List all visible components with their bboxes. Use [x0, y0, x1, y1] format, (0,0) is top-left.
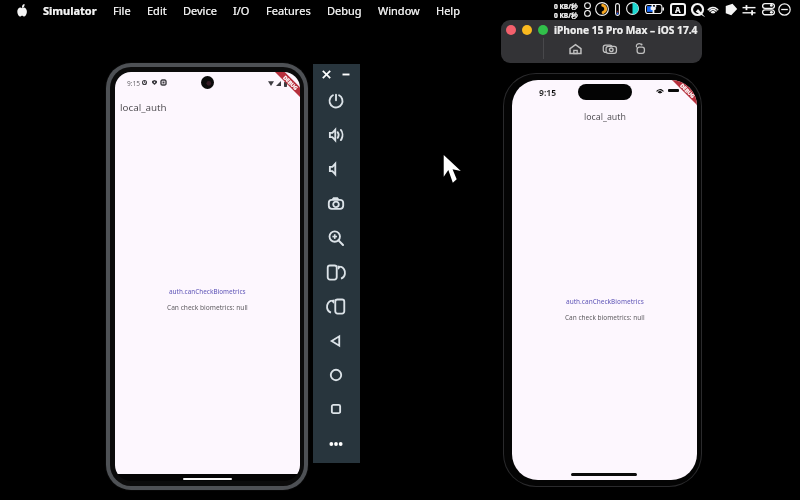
button[interactable]: Rotate right: [327, 263, 345, 281]
staticText: local_auth: [120, 101, 167, 114]
staticText: Window: [378, 3, 420, 18]
button[interactable]: Close window: [506, 25, 516, 35]
button[interactable]: Record screen: [634, 43, 647, 55]
button[interactable]: Edit: [147, 3, 167, 18]
staticText: auth.canCheckBiometrics: [169, 287, 246, 296]
button[interactable]: Rotate left: [327, 297, 345, 315]
button[interactable]: Home: [327, 366, 345, 384]
staticText: iPhone 15 Pro Max – iOS 17.4: [554, 23, 698, 37]
staticText: A: [675, 4, 681, 15]
button[interactable]: Power: [327, 92, 345, 110]
button[interactable]: Minimize window: [522, 25, 532, 35]
button[interactable]: File: [113, 3, 131, 18]
staticText: 9:15: [127, 79, 141, 88]
button[interactable]: Simulator: [43, 3, 97, 18]
staticText: DEBUG: [679, 82, 697, 99]
button[interactable]: Zoom window: [538, 25, 548, 35]
button[interactable]: More: [327, 435, 345, 453]
button[interactable]: I/O: [233, 3, 250, 18]
button[interactable]: Device: [183, 3, 217, 18]
staticText: Edit: [147, 3, 167, 18]
staticText: Can check biometrics: null: [167, 303, 248, 312]
staticText: Simulator: [43, 3, 97, 18]
button[interactable]: Screenshot: [327, 195, 345, 213]
button[interactable]: auth.canCheckBiometrics: [161, 284, 254, 299]
staticText: 0 KB/秒: [554, 2, 578, 11]
button[interactable]: Overview: [327, 400, 345, 418]
staticText: DEBUG: [282, 74, 300, 91]
button[interactable]: Screenshot: [603, 43, 617, 55]
button[interactable]: Home: [569, 43, 582, 55]
staticText: Debug: [327, 3, 362, 18]
staticText: Device: [183, 3, 217, 18]
button[interactable]: Volume down: [327, 160, 345, 178]
button[interactable]: Back: [327, 332, 345, 350]
staticText: Can check biometrics: null: [565, 313, 645, 322]
button[interactable]: Features: [266, 3, 311, 18]
button[interactable]: Zoom: [327, 229, 345, 247]
button[interactable]: Minimize: [342, 70, 350, 79]
button[interactable]: Close: [322, 70, 331, 79]
button[interactable]: Window: [378, 3, 420, 18]
staticText: 9:15: [539, 87, 557, 99]
staticText: Features: [266, 3, 311, 18]
button[interactable]: Debug: [327, 3, 362, 18]
button[interactable]: auth.canCheckBiometrics: [558, 294, 652, 309]
staticText: File: [113, 3, 131, 18]
staticText: 0 KB/秒: [554, 11, 578, 20]
staticText: Help: [436, 3, 460, 18]
staticText: I/O: [233, 3, 250, 18]
staticText: auth.canCheckBiometrics: [566, 297, 644, 306]
button[interactable]: Volume up: [327, 126, 345, 144]
staticText: local_auth: [584, 111, 626, 123]
button[interactable]: Help: [436, 3, 460, 18]
